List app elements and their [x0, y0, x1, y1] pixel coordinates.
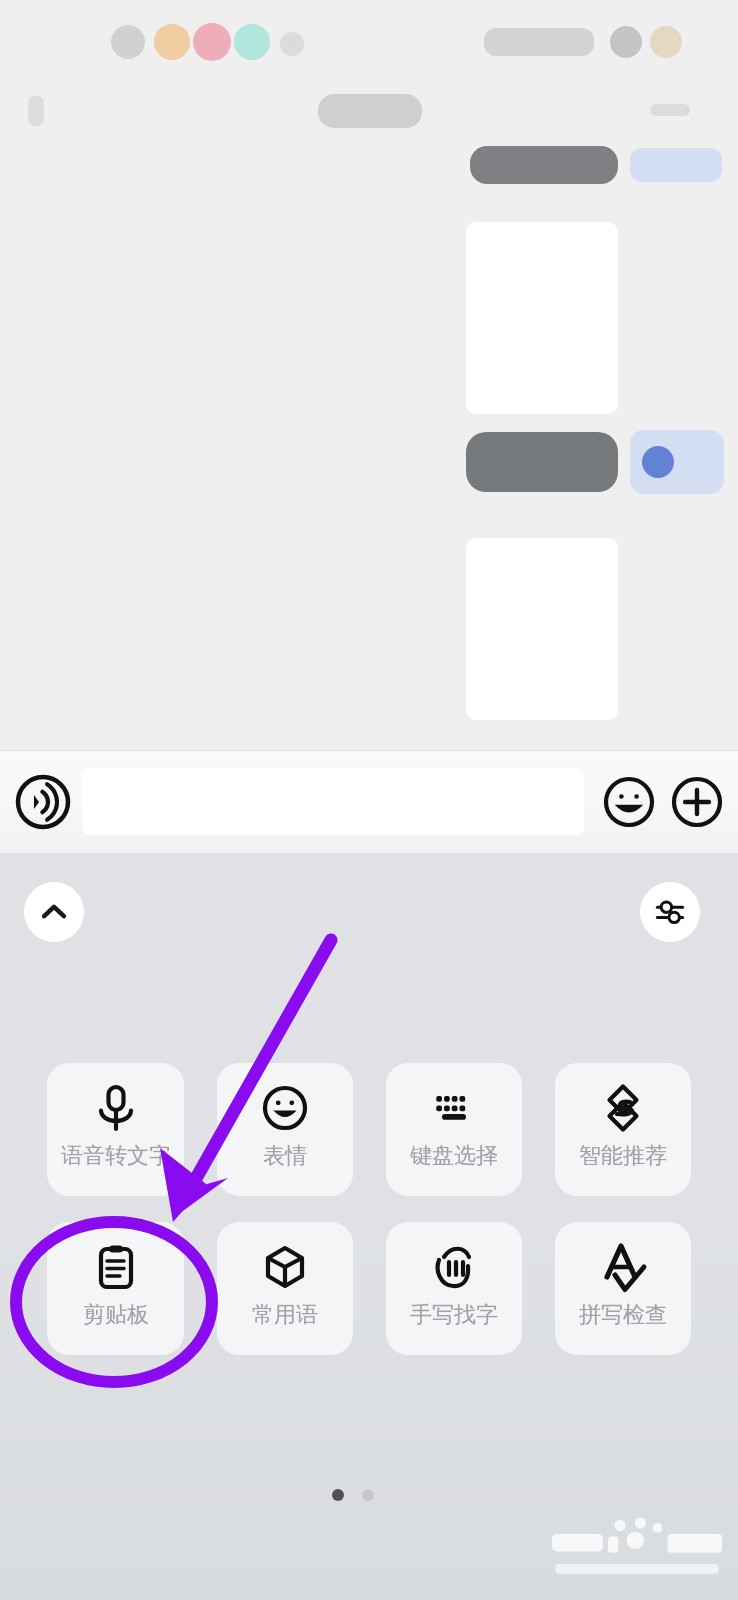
- button[interactable]: 键盘选择: [386, 1063, 522, 1196]
- button[interactable]: 拼写检查: [555, 1222, 691, 1355]
- staticText: 手写找字: [410, 1301, 498, 1329]
- button[interactable]: Voice input: [14, 773, 72, 831]
- staticText: 拼写检查: [579, 1301, 667, 1329]
- button[interactable]: Settings: [640, 882, 700, 942]
- staticText: 语音转文字: [61, 1142, 171, 1170]
- button[interactable]: Emoji: [602, 775, 656, 829]
- button[interactable]: More: [670, 775, 724, 829]
- staticText: 剪贴板: [83, 1301, 149, 1329]
- button[interactable]: 表情: [217, 1063, 353, 1196]
- staticText: 表情: [263, 1142, 307, 1170]
- button[interactable]: 常用语: [217, 1222, 353, 1355]
- button[interactable]: 剪贴板: [47, 1222, 184, 1355]
- button[interactable]: 手写找字: [386, 1222, 522, 1355]
- button[interactable]: 语音转文字: [47, 1063, 184, 1196]
- staticText: 常用语: [252, 1301, 318, 1329]
- staticText: 智能推荐: [579, 1142, 667, 1170]
- button[interactable]: 智能推荐: [555, 1063, 691, 1196]
- staticText: 键盘选择: [410, 1142, 498, 1170]
- button[interactable]: Collapse: [24, 882, 84, 942]
